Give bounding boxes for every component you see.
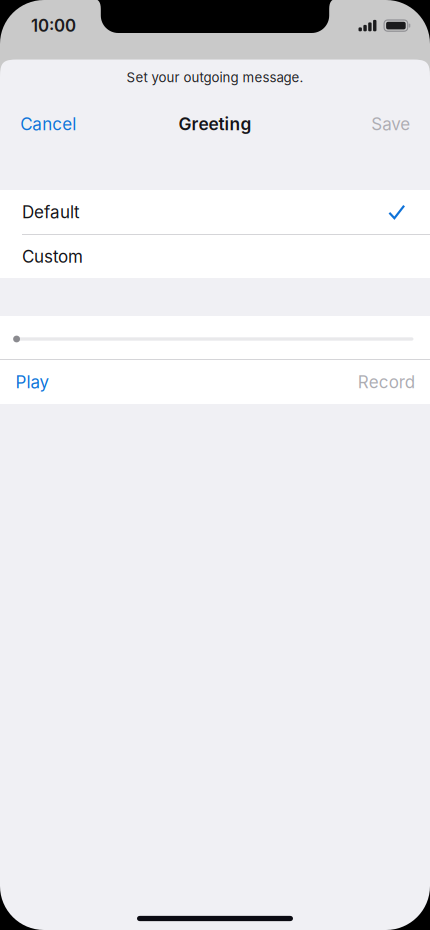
staticText: Save (371, 114, 410, 134)
staticText: Cancel (20, 114, 76, 134)
staticText: Custom (22, 246, 83, 267)
staticText: Play (15, 372, 49, 392)
button[interactable]: Play (12, 363, 52, 401)
button[interactable]: Save (368, 106, 413, 142)
button[interactable]: Custom (0, 235, 430, 278)
button[interactable]: Cancel (17, 106, 79, 142)
staticText: Greeting (178, 113, 251, 134)
button[interactable]: Record (355, 363, 418, 401)
staticText: Record (358, 372, 415, 392)
staticText: Default (22, 202, 80, 222)
staticText: 10:00 (31, 15, 76, 36)
staticText: Set your outgoing message. (126, 69, 303, 86)
button[interactable]: Default (0, 190, 430, 234)
